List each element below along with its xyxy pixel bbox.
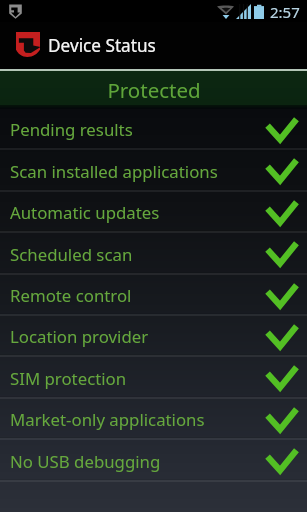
button[interactable]: Device Status xyxy=(0,22,307,69)
button[interactable]: SIM protection xyxy=(0,357,307,399)
other: Wi-Fi xyxy=(217,6,234,19)
staticText: Remote control xyxy=(10,284,132,307)
staticText: Automatic updates xyxy=(10,201,160,224)
staticText: Pending results xyxy=(10,118,133,141)
staticText: Protected xyxy=(107,76,201,104)
button[interactable]: Scheduled scan xyxy=(0,233,307,275)
button[interactable]: Location provider xyxy=(0,316,307,357)
button[interactable]: No USB debugging xyxy=(0,440,307,482)
staticText: Device Status xyxy=(48,34,156,57)
button[interactable]: Pending results xyxy=(0,109,307,150)
staticText: No USB debugging xyxy=(10,450,161,473)
button[interactable]: Automatic updates xyxy=(0,192,307,233)
button[interactable]: Scan installed applications xyxy=(0,150,307,192)
staticText: Scan installed applications xyxy=(10,160,218,183)
button[interactable]: Market-only applications xyxy=(0,399,307,440)
staticText: SIM protection xyxy=(10,367,127,390)
other: Battery xyxy=(254,4,264,19)
button[interactable]: Remote control xyxy=(0,275,307,316)
other: Mobile signal xyxy=(236,4,251,19)
staticText: 2:57 xyxy=(270,2,300,22)
staticText: Scheduled scan xyxy=(10,243,133,266)
staticText: Location provider xyxy=(10,325,149,348)
staticText: Market-only applications xyxy=(10,408,205,431)
other: Security notification xyxy=(8,4,23,19)
